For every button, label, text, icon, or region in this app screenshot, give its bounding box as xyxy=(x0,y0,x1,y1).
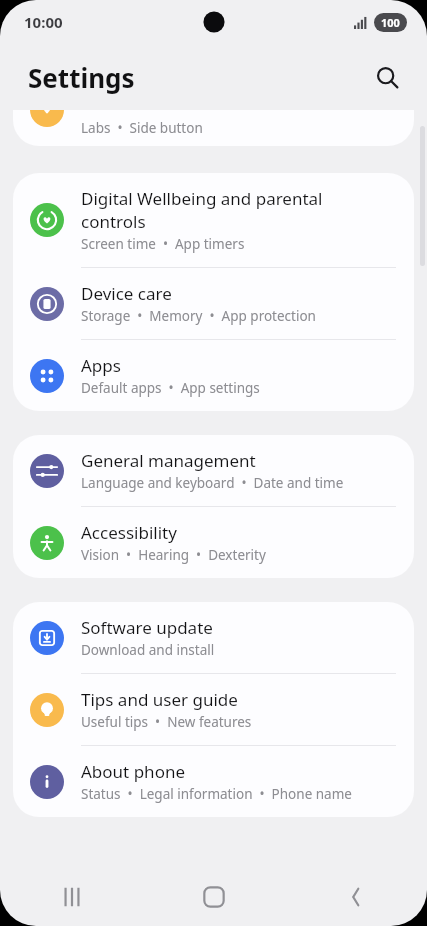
button[interactable]: Labs • Side button xyxy=(13,110,414,146)
staticText: Download and install xyxy=(81,641,215,659)
staticText: Settings xyxy=(28,60,135,95)
staticText: Digital Wellbeing and parental controls xyxy=(81,187,323,233)
staticText: About phone xyxy=(81,760,186,783)
staticText: Vision • Hearing • Dexterity xyxy=(81,546,266,564)
staticText: Labs • Side button xyxy=(81,119,203,137)
button[interactable]: Device care xyxy=(13,268,414,339)
staticText: Useful tips • New features xyxy=(81,713,252,731)
staticText: 10:00 xyxy=(24,12,63,32)
button[interactable]: About phone xyxy=(13,746,414,817)
staticText: Default apps • App settings xyxy=(81,379,260,397)
staticText: Tips and user guide xyxy=(81,688,238,711)
staticText: Status • Legal information • Phone name xyxy=(81,785,352,803)
button[interactable]: Digital Wellbeing and parental controls xyxy=(13,173,414,267)
staticText: Apps xyxy=(81,354,121,377)
staticText: Language and keyboard • Date and time xyxy=(81,474,344,492)
staticText: Software update xyxy=(81,616,213,639)
button[interactable]: Recents xyxy=(0,868,143,926)
staticText: Device care xyxy=(81,282,172,305)
staticText: General management xyxy=(81,449,256,472)
staticText: Accessibility xyxy=(81,521,177,544)
button[interactable]: Back xyxy=(285,868,427,926)
button[interactable]: Apps xyxy=(13,340,414,411)
button[interactable]: Accessibility xyxy=(13,507,414,578)
button[interactable]: Home xyxy=(143,868,285,926)
staticText: Storage • Memory • App protection xyxy=(81,307,316,325)
button[interactable]: Software update xyxy=(13,602,414,673)
button[interactable]: General management xyxy=(13,435,414,506)
staticText: Screen time • App timers xyxy=(81,235,245,253)
staticText: 100 xyxy=(381,15,400,30)
button[interactable]: Tips and user guide xyxy=(13,674,414,745)
button[interactable]: Search xyxy=(365,55,409,99)
